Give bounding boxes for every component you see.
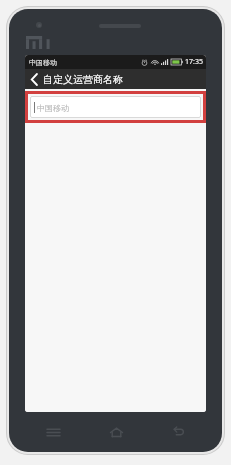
staticText: 中国移动 bbox=[29, 58, 57, 67]
staticText: 17:35 bbox=[185, 57, 203, 67]
button[interactable]: 中国移动 bbox=[30, 96, 201, 118]
staticText: 自定义运营商名称 bbox=[43, 73, 123, 86]
button[interactable]: Back bbox=[25, 69, 43, 89]
button[interactable]: Home bbox=[98, 414, 134, 450]
staticText: 中国移动 bbox=[37, 103, 69, 113]
button[interactable]: Menu bbox=[35, 414, 71, 450]
button[interactable]: Back bbox=[160, 414, 196, 450]
